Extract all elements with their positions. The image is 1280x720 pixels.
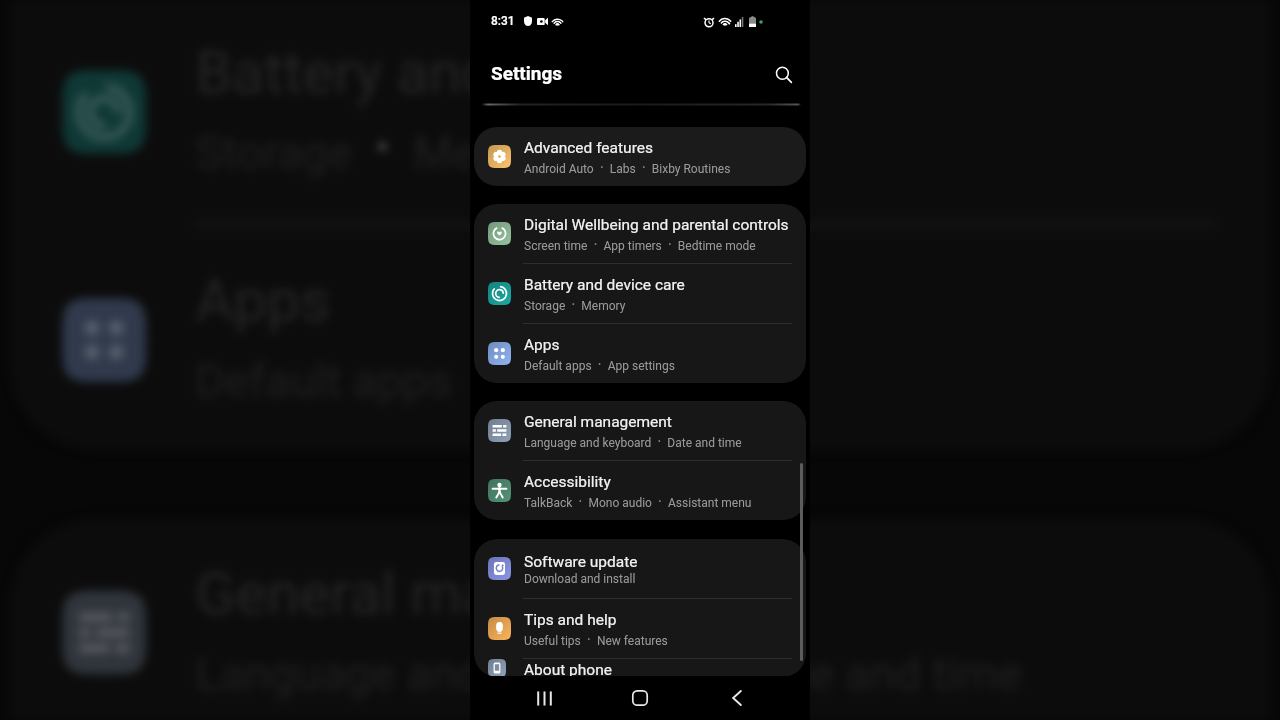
staticText: Battery and device care — [195, 40, 807, 108]
staticText: Download and install — [524, 572, 636, 586]
button[interactable]: Digital Wellbeing and parental controls — [474, 204, 806, 263]
staticText: Storage · Memory — [195, 112, 583, 184]
button[interactable]: About phone — [474, 659, 806, 677]
staticText: Accessibility — [524, 473, 611, 491]
staticText: Default apps · App settings — [195, 340, 769, 412]
button[interactable]: Search — [764, 55, 804, 95]
staticText: Apps — [195, 268, 332, 336]
button[interactable]: Back — [714, 676, 760, 720]
staticText: Language and keyboard · Date and time — [524, 432, 742, 451]
staticText: About phone — [524, 661, 612, 677]
staticText: Tips and help — [524, 611, 617, 629]
staticText: Settings — [491, 62, 563, 84]
staticText: 8:31 — [491, 14, 515, 28]
button[interactable]: General management — [474, 401, 806, 460]
button[interactable]: Advanced features — [474, 127, 806, 186]
staticText: Software update — [524, 553, 638, 571]
staticText: TalkBack · Mono audio · Assistant menu — [524, 492, 752, 511]
staticText: Useful tips · New features — [524, 630, 668, 649]
button[interactable]: Home — [617, 676, 663, 720]
button[interactable]: Tips and help — [474, 599, 806, 658]
button[interactable]: Accessibility — [474, 461, 806, 520]
button[interactable]: Apps — [474, 324, 806, 383]
staticText: Digital Wellbeing and parental controls — [524, 216, 789, 234]
staticText: Apps — [524, 336, 560, 354]
button[interactable]: Battery and device care — [474, 264, 806, 323]
staticText: General management — [195, 560, 758, 629]
staticText: Storage · Memory — [524, 295, 626, 314]
staticText: Battery and device care — [524, 276, 685, 294]
staticText: Language and keyboard · Date and time — [195, 633, 1024, 705]
staticText: Default apps · App settings — [524, 355, 675, 374]
staticText: Android Auto · Labs · Bixby Routines — [524, 158, 731, 177]
staticText: Screen time · App timers · Bedtime mode — [524, 235, 756, 254]
staticText: Advanced features — [524, 139, 653, 157]
staticText: General management — [524, 413, 672, 431]
button[interactable]: Software update — [474, 539, 806, 598]
button[interactable]: Recents — [521, 676, 567, 720]
